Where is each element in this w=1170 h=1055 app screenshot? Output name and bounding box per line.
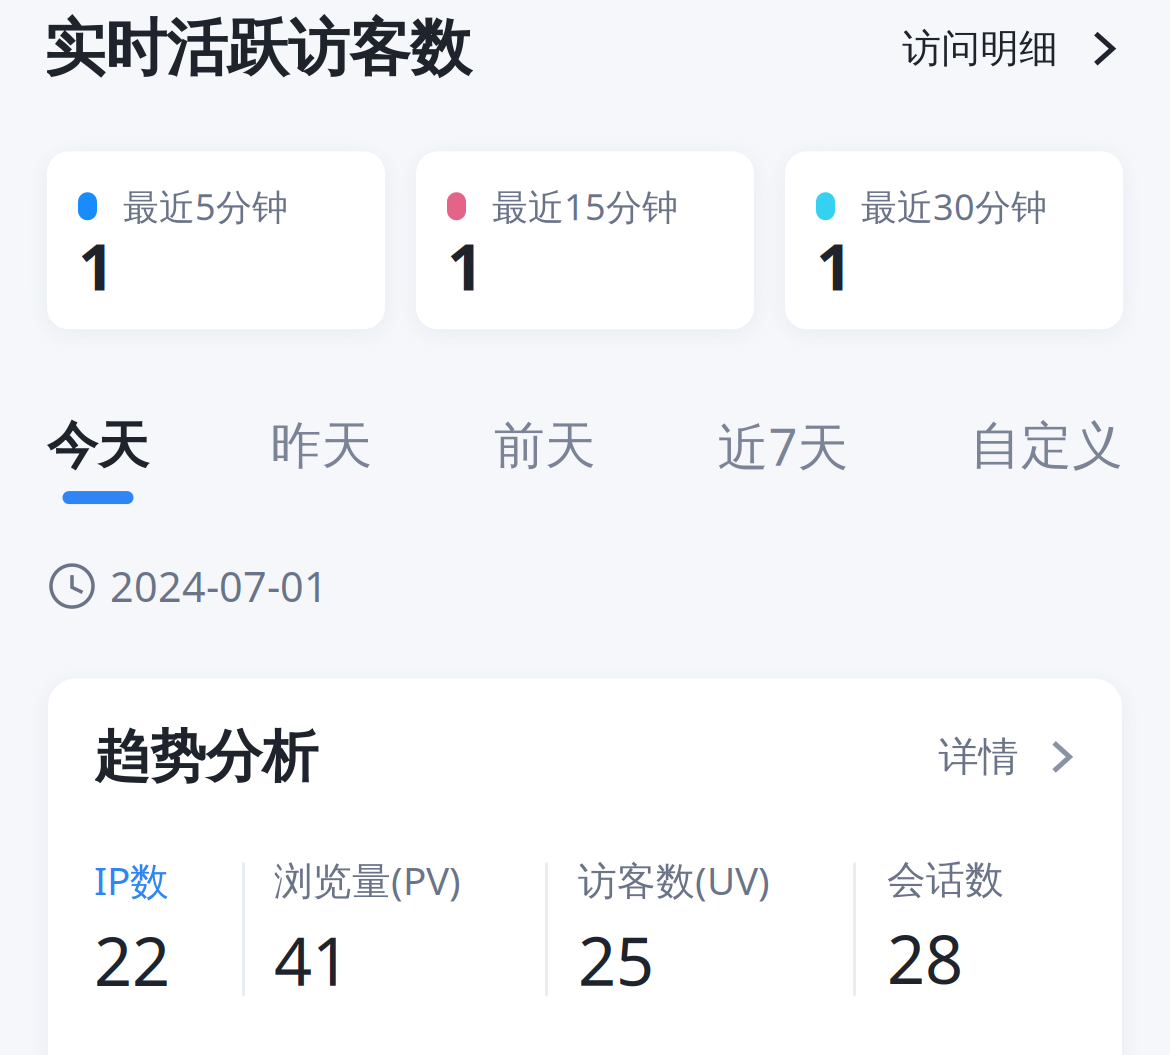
staticText: 访客数(UV) <box>578 854 770 906</box>
staticText: 22 <box>94 916 170 1004</box>
staticText: IP数 <box>94 854 169 906</box>
staticText: 昨天 <box>270 415 372 477</box>
staticText: 浏览量(PV) <box>274 854 461 906</box>
staticText: 访问明细 <box>902 25 1058 72</box>
button[interactable]: 自定义 <box>970 415 1123 504</box>
staticText: 41 <box>274 916 350 1004</box>
staticText: 最近5分钟 <box>123 182 288 230</box>
staticText: 前天 <box>494 415 596 477</box>
staticText: 详情 <box>938 732 1018 781</box>
button[interactable]: 最近5分钟 <box>47 151 385 329</box>
button[interactable]: 详情 <box>938 732 1072 781</box>
button[interactable]: 今天 <box>47 415 149 504</box>
button[interactable]: 最近30分钟 <box>785 151 1123 329</box>
staticText: 今天 <box>47 415 149 477</box>
staticText: 会话数 <box>887 856 1004 904</box>
button[interactable]: 昨天 <box>270 415 372 504</box>
staticText: 2024-07-01 <box>110 559 328 613</box>
staticText: 28 <box>887 914 963 1002</box>
button[interactable]: 近7天 <box>717 412 848 507</box>
button[interactable]: 访客数(UV) <box>548 854 853 1004</box>
staticText: 25 <box>578 916 654 1004</box>
button[interactable]: IP数 <box>48 854 242 1004</box>
button[interactable]: 最近15分钟 <box>416 151 754 329</box>
button[interactable]: 前天 <box>494 415 596 504</box>
button[interactable]: 访问明细 <box>902 25 1115 72</box>
staticText: 1 <box>447 223 484 308</box>
staticText: 1 <box>816 223 853 308</box>
staticText: 1 <box>78 223 115 308</box>
staticText: 实时活跃访客数 <box>44 11 471 86</box>
button[interactable]: 浏览量(PV) <box>245 854 545 1004</box>
staticText: 自定义 <box>970 415 1123 477</box>
staticText: 趋势分析 <box>94 722 318 791</box>
staticText: 最近30分钟 <box>861 182 1047 230</box>
staticText: 近7天 <box>717 412 848 480</box>
staticText: 最近15分钟 <box>492 182 678 230</box>
button[interactable]: 会话数 <box>856 856 1096 1002</box>
